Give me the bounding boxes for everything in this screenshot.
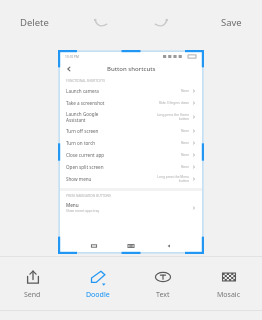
button[interactable]: Doodle	[65, 257, 130, 310]
staticText: Launch camera	[66, 88, 99, 94]
button[interactable]: Launch camera	[60, 85, 202, 97]
staticText: Turn on torch	[66, 140, 96, 146]
button[interactable]: Launch Google Assistant	[60, 109, 202, 125]
button[interactable]: Send	[0, 257, 65, 310]
button[interactable]: Redo	[149, 10, 173, 34]
button[interactable]: Menu	[60, 200, 202, 215]
button[interactable]: Open split screen	[60, 161, 202, 173]
staticText: Take a screenshot	[66, 100, 105, 106]
button[interactable]: Turn off screen	[60, 125, 202, 137]
button[interactable]: Turn on torch	[60, 137, 202, 149]
staticText: Button shortcuts	[107, 65, 156, 73]
button[interactable]: Text	[130, 257, 196, 310]
button[interactable]: Take a screenshot	[60, 97, 202, 109]
staticText: Mosaic	[217, 290, 241, 300]
button[interactable]: Delete	[14, 11, 55, 34]
staticText: Delete	[20, 16, 49, 29]
button[interactable]: 10:10 PM	[60, 52, 202, 252]
staticText: Show menu	[66, 176, 92, 182]
staticText: None	[180, 165, 189, 169]
staticText: Long press the Home button	[156, 113, 189, 121]
staticText: FUNCTIONAL SHORTCUTS	[66, 79, 105, 83]
staticText: Close current app	[66, 152, 105, 158]
staticText: Long press the Menu button	[157, 175, 189, 183]
staticText: Send	[24, 290, 41, 300]
button[interactable]: Mosaic	[196, 257, 262, 310]
staticText: Launch Google Assistant	[66, 111, 99, 123]
staticText: None	[180, 89, 189, 93]
staticText: Save	[221, 16, 242, 29]
staticText: Slide 3 fingers down	[158, 101, 189, 105]
button[interactable]: Undo	[89, 10, 113, 34]
staticText: Show recent apps tray	[66, 209, 100, 213]
staticText: Text	[156, 290, 170, 300]
staticText: Doodle	[86, 290, 110, 300]
button[interactable]: Close current app	[60, 149, 202, 161]
staticText: Turn off screen	[66, 128, 99, 134]
staticText: Menu	[66, 202, 79, 208]
button[interactable]: Show menu	[60, 173, 202, 185]
button[interactable]: Save	[215, 11, 248, 34]
staticText: Open split screen	[66, 164, 104, 170]
staticText: None	[180, 141, 189, 145]
staticText: None	[180, 153, 189, 157]
staticText: PRESS NAVIGATION BUTTONS	[66, 194, 111, 198]
staticText: 10:10 PM	[65, 55, 79, 59]
staticText: None	[180, 129, 189, 133]
